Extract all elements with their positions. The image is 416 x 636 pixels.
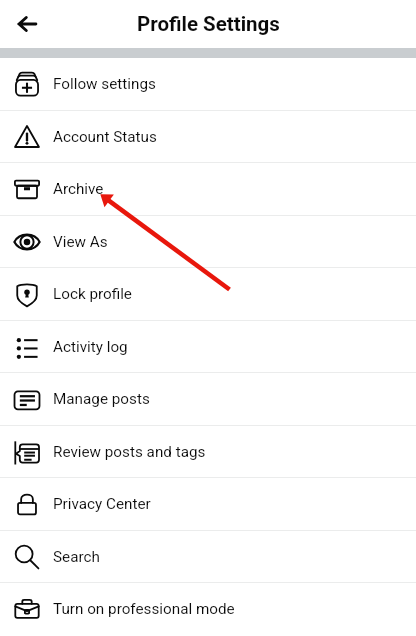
staticText: Manage posts: [53, 390, 150, 408]
button[interactable]: Manage posts: [0, 373, 416, 425]
button[interactable]: Activity log: [0, 321, 416, 372]
staticText: View As: [53, 233, 108, 251]
button[interactable]: Follow settings: [0, 58, 416, 110]
button[interactable]: Back: [5, 2, 49, 46]
staticText: Account Status: [53, 128, 157, 146]
staticText: Privacy Center: [53, 495, 151, 513]
staticText: Lock profile: [53, 285, 132, 303]
button[interactable]: Account Status: [0, 111, 416, 162]
staticText: Profile Settings: [137, 12, 280, 36]
button[interactable]: Search: [0, 531, 416, 582]
button[interactable]: View As: [0, 216, 416, 267]
staticText: Search: [53, 548, 100, 566]
button[interactable]: Archive: [0, 163, 416, 215]
staticText: Turn on professional mode: [53, 600, 235, 618]
button[interactable]: Review posts and tags: [0, 426, 416, 477]
button[interactable]: Privacy Center: [0, 478, 416, 530]
button[interactable]: Lock profile: [0, 268, 416, 320]
staticText: Activity log: [53, 338, 128, 356]
staticText: Review posts and tags: [53, 443, 206, 461]
button[interactable]: Turn on professional mode: [0, 583, 416, 635]
staticText: Archive: [53, 180, 104, 198]
staticText: Follow settings: [53, 75, 156, 93]
